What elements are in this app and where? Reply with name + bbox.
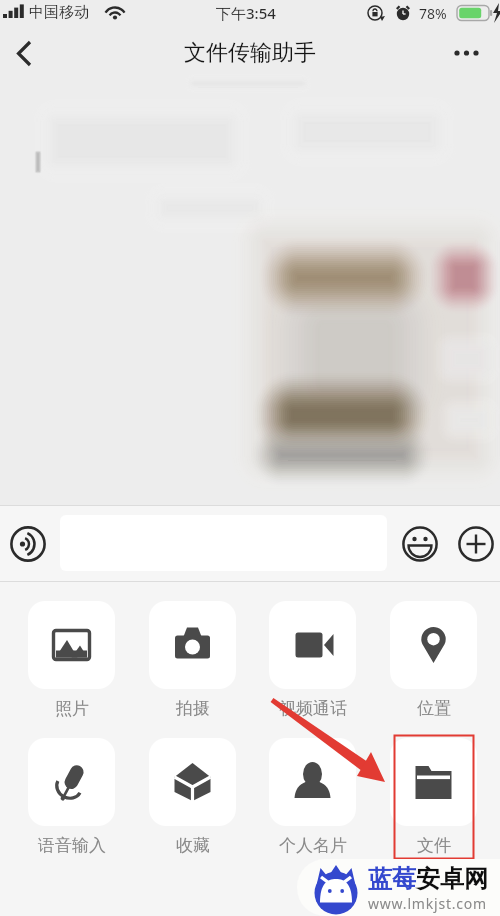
button[interactable]: 文件 [390,738,477,856]
button[interactable]: Voice input [6,522,50,566]
staticText: 文件 [417,835,451,856]
staticText: 个人名片 [279,835,347,856]
staticText: 位置 [417,698,451,719]
button[interactable]: 语音输入 [28,738,115,856]
button[interactable]: Back [0,28,52,78]
staticText: 视频通话 [279,698,347,719]
staticText: 照片 [55,698,89,719]
button[interactable]: 个人名片 [269,738,356,856]
staticText: 78% [419,4,447,23]
staticText: 语音输入 [38,835,106,856]
button[interactable]: More [454,522,498,566]
staticText: 拍摄 [176,698,210,719]
staticText: 安卓网 [416,864,488,894]
button[interactable]: 照片 [28,601,115,719]
button[interactable]: More options [448,28,500,78]
staticText: www.lmkjst.com [368,894,487,913]
staticText: 下午3:54 [216,3,276,23]
staticText: 中国移动 [29,3,89,22]
button[interactable]: 收藏 [149,738,236,856]
staticText: 文件传输助手 [184,39,316,67]
staticText: 收藏 [176,835,210,856]
button[interactable]: 位置 [390,601,477,719]
staticText: 蓝莓 [368,864,416,894]
button[interactable]: Emoji [398,522,442,566]
button[interactable]: 拍摄 [149,601,236,719]
button[interactable]: 视频通话 [269,601,356,719]
